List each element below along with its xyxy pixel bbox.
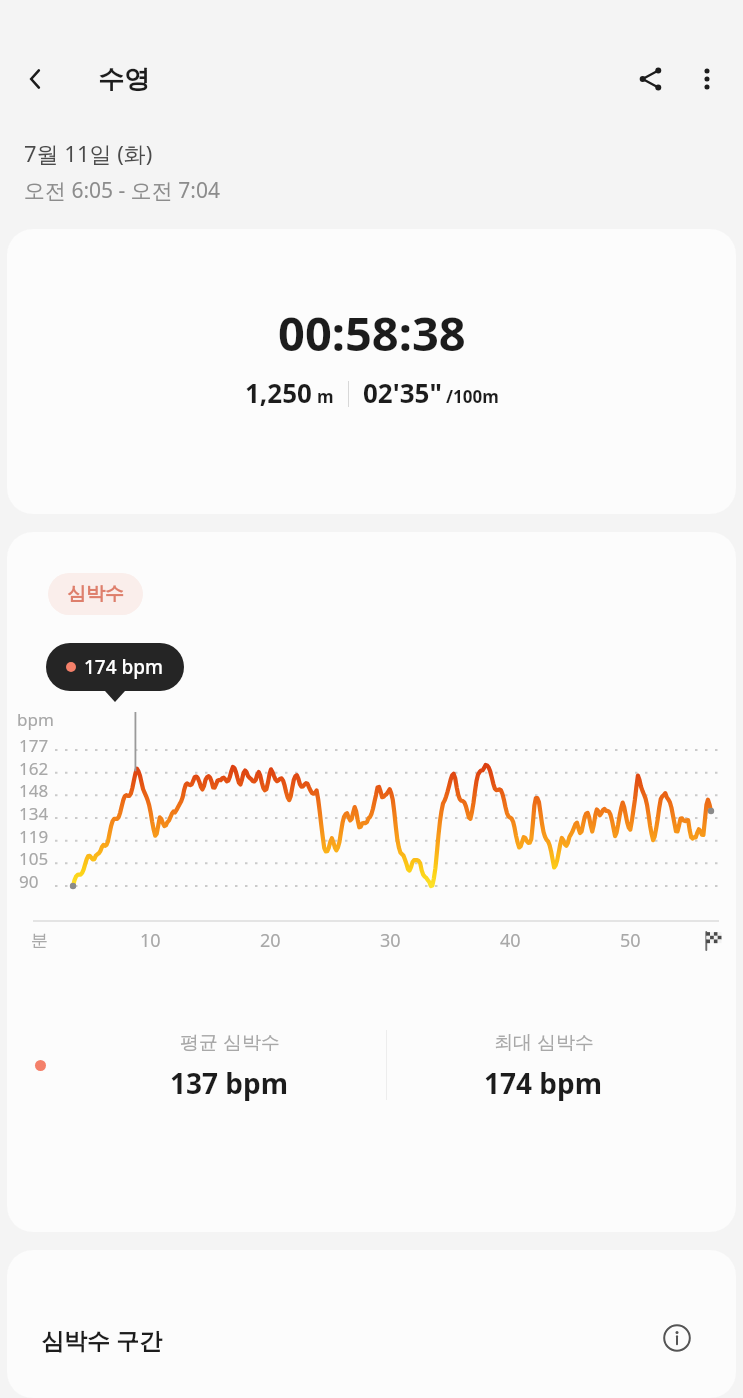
staticText: 174 bpm bbox=[84, 654, 164, 680]
staticText: 162 bbox=[19, 757, 49, 780]
button[interactable]: Share bbox=[623, 51, 679, 107]
staticText: 평균 심박수 bbox=[180, 1029, 280, 1055]
staticText: 105 bbox=[19, 847, 49, 870]
staticText: 119 bbox=[19, 825, 49, 848]
staticText: 수영 bbox=[98, 63, 150, 96]
staticText: 174 bpm bbox=[484, 1064, 603, 1102]
staticText: /100m bbox=[446, 385, 499, 408]
button[interactable]: 심박수 bbox=[48, 573, 143, 615]
staticText: 40 bbox=[500, 928, 521, 953]
staticText: 30 bbox=[380, 928, 401, 953]
staticText: 148 bbox=[19, 779, 49, 802]
staticText: 1,250 bbox=[245, 375, 312, 410]
staticText: 134 bbox=[19, 802, 49, 825]
staticText: 10 bbox=[140, 928, 161, 953]
staticText: bpm bbox=[17, 708, 54, 731]
staticText: 오전 6:05 - 오전 7:04 bbox=[24, 176, 220, 205]
staticText: 00:58:38 bbox=[278, 301, 466, 365]
other: Finish bbox=[690, 931, 736, 950]
staticText: 177 bbox=[19, 734, 49, 757]
button[interactable]: Information bbox=[655, 1316, 699, 1360]
staticText: 심박수 bbox=[67, 582, 124, 606]
staticText: 90 bbox=[19, 870, 39, 893]
staticText: 137 bpm bbox=[170, 1064, 289, 1102]
staticText: 심박수 구간 bbox=[41, 1324, 162, 1355]
staticText: m bbox=[317, 385, 334, 408]
button[interactable]: Back bbox=[10, 53, 62, 105]
button[interactable]: 심박수 bbox=[7, 532, 736, 1232]
staticText: 7월 11일 (화) bbox=[24, 138, 153, 168]
button[interactable]: More options bbox=[679, 51, 735, 107]
staticText: 분 bbox=[31, 930, 48, 951]
staticText: 02'35" bbox=[363, 375, 442, 410]
staticText: 50 bbox=[620, 928, 641, 953]
button[interactable]: 00:58:38 bbox=[7, 229, 736, 514]
button[interactable]: 심박수 구간 bbox=[7, 1250, 736, 1398]
staticText: 최대 심박수 bbox=[494, 1029, 594, 1055]
staticText: 20 bbox=[260, 928, 281, 953]
